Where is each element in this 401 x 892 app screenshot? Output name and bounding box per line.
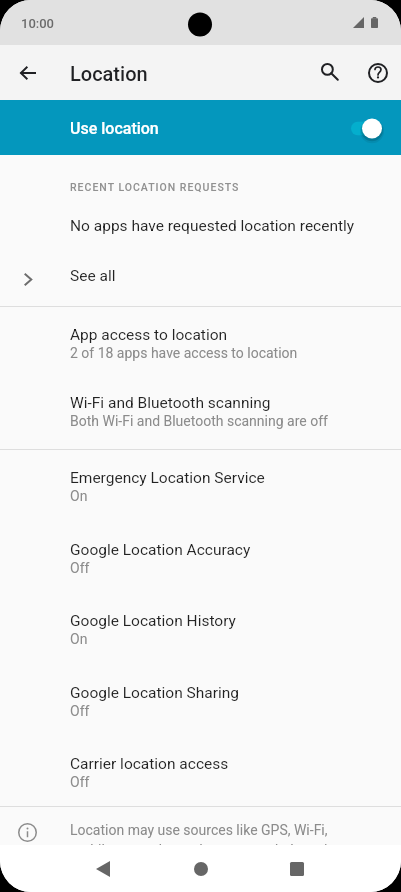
button[interactable]: Use location xyxy=(0,100,401,155)
staticText: Wi-Fi and Bluetooth scanning xyxy=(70,394,271,412)
staticText: Google Location Accuracy xyxy=(70,541,251,559)
staticText: Off xyxy=(70,774,90,790)
staticText: Use location xyxy=(70,119,159,138)
staticText: See all xyxy=(70,267,116,285)
button[interactable]: Carrier location access xyxy=(0,736,401,808)
staticText: On xyxy=(70,488,88,504)
staticText: RECENT LOCATION REQUESTS xyxy=(70,181,240,193)
staticText: App access to location xyxy=(70,326,228,344)
staticText: Location may use sources like GPS, Wi-Fi… xyxy=(70,822,370,892)
staticText: Off xyxy=(70,560,90,576)
button[interactable]: Google Location History xyxy=(0,593,401,665)
button[interactable]: App access to location xyxy=(0,307,401,375)
button[interactable]: Google Location Sharing xyxy=(0,665,401,737)
button[interactable]: Search xyxy=(310,52,350,92)
button[interactable]: No apps have requested location recently xyxy=(0,200,401,246)
button[interactable]: Emergency Location Service xyxy=(0,450,401,522)
staticText: 2 of 18 apps have access to location xyxy=(70,345,298,361)
button[interactable]: See all xyxy=(0,250,401,306)
button[interactable]: Help xyxy=(358,53,398,93)
button[interactable]: Navigate up xyxy=(4,49,52,97)
staticText: Both Wi-Fi and Bluetooth scanning are of… xyxy=(70,413,328,429)
staticText: No apps have requested location recently xyxy=(70,217,355,235)
staticText: Google Location History xyxy=(70,612,236,630)
button[interactable]: Back xyxy=(71,845,135,892)
button[interactable]: Recent apps xyxy=(265,845,329,892)
button[interactable]: Home xyxy=(169,845,233,892)
staticText: Carrier location access xyxy=(70,755,229,773)
staticText: Location xyxy=(70,62,148,85)
button[interactable]: Wi-Fi and Bluetooth scanning xyxy=(0,375,401,450)
button[interactable]: Google Location Accuracy xyxy=(0,522,401,594)
staticText: 10:00 xyxy=(21,16,54,31)
staticText: Off xyxy=(70,703,90,719)
staticText: Emergency Location Service xyxy=(70,469,265,487)
staticText: On xyxy=(70,631,88,647)
staticText: Google Location Sharing xyxy=(70,684,240,702)
